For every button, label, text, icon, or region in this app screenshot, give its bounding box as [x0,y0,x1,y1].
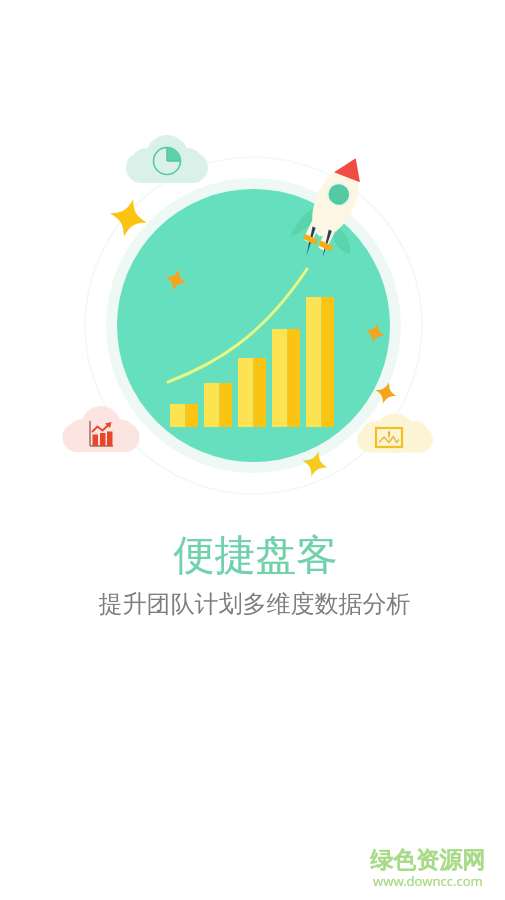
button[interactable] [0,0,505,900]
